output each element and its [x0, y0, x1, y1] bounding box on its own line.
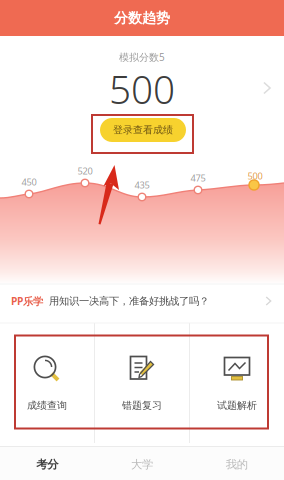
- staticText: 模拟分数5: [119, 50, 165, 64]
- button[interactable]: 错题复习: [95, 323, 189, 443]
- staticText: 成绩查询: [27, 399, 67, 412]
- staticText: 我的: [226, 457, 248, 472]
- button[interactable]: 登录查看成绩: [100, 118, 186, 142]
- staticText: 435: [134, 179, 149, 191]
- staticText: 500: [109, 63, 175, 115]
- staticText: 考分: [36, 457, 58, 472]
- staticText: 大学: [131, 457, 153, 472]
- button[interactable]: 试题解析: [190, 323, 284, 443]
- button[interactable]: PP乐学: [0, 285, 284, 317]
- staticText: 分数趋势: [114, 9, 170, 27]
- staticText: 520: [77, 165, 92, 177]
- staticText: 用知识一决高下，准备好挑战了吗？: [49, 294, 209, 307]
- staticText: 试题解析: [217, 399, 257, 412]
- button[interactable]: 我的: [189, 447, 284, 480]
- button[interactable]: 考分: [0, 447, 95, 480]
- button[interactable]: 大学: [95, 447, 189, 480]
- staticText: 登录查看成绩: [113, 124, 173, 136]
- staticText: 475: [190, 172, 205, 184]
- button[interactable]: Next score: [257, 76, 277, 100]
- staticText: 错题复习: [122, 399, 162, 412]
- staticText: 500: [247, 170, 262, 182]
- staticText: 450: [21, 176, 36, 188]
- staticText: PP乐学: [11, 294, 43, 308]
- button[interactable]: 成绩查询: [0, 323, 94, 443]
